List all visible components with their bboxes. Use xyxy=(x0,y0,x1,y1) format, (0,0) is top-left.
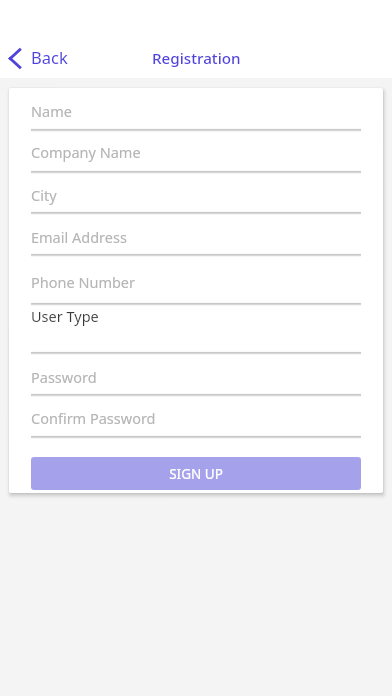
staticText: SIGN UP xyxy=(169,465,223,483)
staticText: Registration xyxy=(152,48,241,69)
staticText: Phone Number xyxy=(31,272,136,292)
staticText: Confirm Password xyxy=(31,408,156,428)
button[interactable]: Name xyxy=(31,88,361,130)
button[interactable]: Email Address xyxy=(31,213,361,255)
button[interactable]: Password xyxy=(31,353,361,395)
button[interactable]: Company Name xyxy=(31,130,361,172)
button[interactable]: SIGN UP xyxy=(31,457,361,490)
button[interactable]: City xyxy=(31,172,361,213)
staticText: Company Name xyxy=(31,142,141,162)
staticText: Password xyxy=(31,367,97,387)
button[interactable]: Phone Number xyxy=(31,255,361,304)
staticText: Name xyxy=(31,101,72,121)
staticText: Back xyxy=(31,46,68,68)
button[interactable]: Confirm Password xyxy=(31,395,361,437)
staticText: User Type xyxy=(31,306,99,326)
button[interactable]: User Type xyxy=(31,304,361,353)
staticText: City xyxy=(31,185,57,205)
staticText: Email Address xyxy=(31,227,127,247)
button[interactable]: Back xyxy=(3,41,76,73)
